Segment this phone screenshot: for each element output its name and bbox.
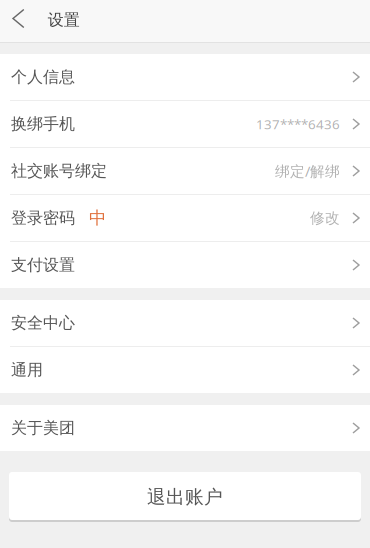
button[interactable]: 通用 bbox=[0, 347, 370, 393]
button[interactable]: 个人信息 bbox=[0, 54, 370, 100]
button[interactable]: 社交账号绑定 bbox=[0, 148, 370, 194]
staticText: 个人信息 bbox=[11, 67, 75, 87]
staticText: 绑定/解绑 bbox=[275, 161, 340, 181]
button[interactable]: 关于美团 bbox=[0, 405, 370, 451]
button[interactable]: 安全中心 bbox=[0, 300, 370, 346]
staticText: 登录密码 bbox=[11, 208, 75, 228]
staticText: 社交账号绑定 bbox=[11, 161, 107, 181]
button[interactable]: Back bbox=[0, 0, 48, 42]
staticText: 修改 bbox=[310, 209, 340, 227]
button[interactable]: 退出账户 bbox=[9, 472, 361, 522]
staticText: 中 bbox=[89, 207, 106, 229]
button[interactable]: 登录密码 bbox=[0, 195, 370, 241]
button[interactable]: 支付设置 bbox=[0, 242, 370, 288]
staticText: 通用 bbox=[11, 360, 43, 380]
staticText: 安全中心 bbox=[11, 313, 75, 333]
staticText: 关于美团 bbox=[11, 418, 75, 438]
staticText: 退出账户 bbox=[147, 485, 223, 508]
staticText: 换绑手机 bbox=[11, 114, 75, 134]
staticText: 137****6436 bbox=[256, 115, 340, 133]
button[interactable]: 换绑手机 bbox=[0, 101, 370, 147]
staticText: 设置 bbox=[48, 10, 80, 30]
staticText: 支付设置 bbox=[11, 255, 75, 275]
